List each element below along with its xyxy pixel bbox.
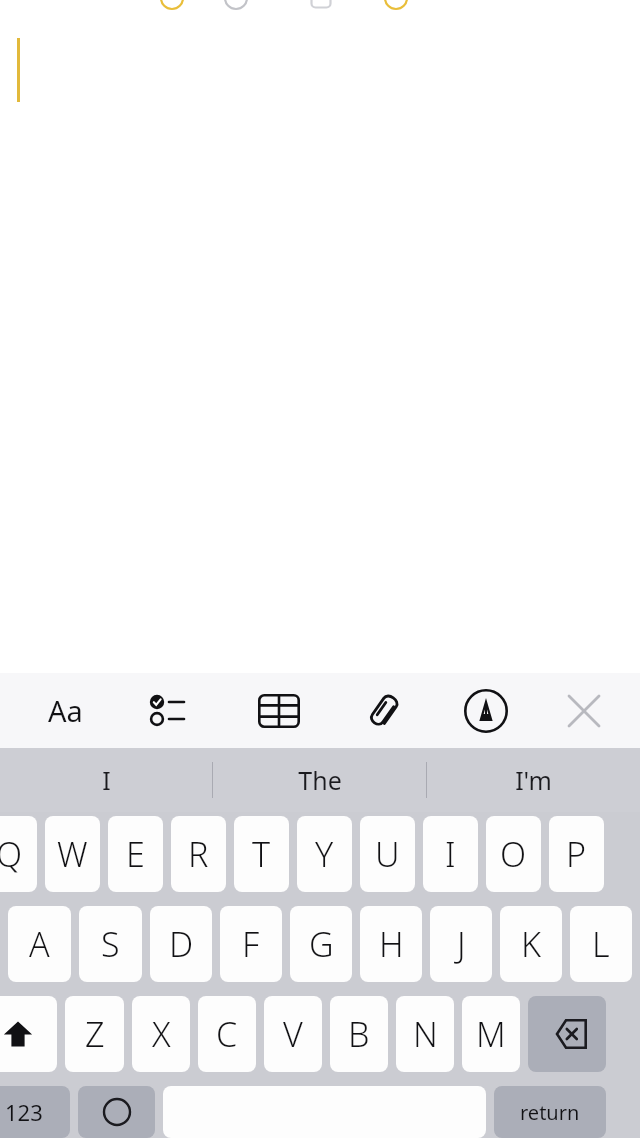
staticText: return: [520, 1099, 580, 1126]
staticText: W: [57, 831, 88, 877]
button[interactable]: I: [0, 748, 212, 812]
button[interactable]: Markup: [452, 673, 520, 748]
staticText: I: [445, 831, 456, 877]
staticText: G: [309, 921, 334, 967]
staticText: Q: [0, 831, 23, 877]
button[interactable]: U: [360, 816, 415, 892]
staticText: B: [348, 1011, 370, 1057]
button[interactable]: W: [45, 816, 100, 892]
button[interactable]: K: [500, 906, 562, 982]
staticText: O: [500, 831, 527, 877]
staticText: U: [375, 831, 400, 877]
staticText: A: [29, 921, 50, 967]
button[interactable]: Emoji: [78, 1086, 155, 1138]
button[interactable]: N: [396, 996, 454, 1072]
button[interactable]: R: [171, 816, 226, 892]
staticText: R: [188, 831, 209, 877]
staticText: Y: [315, 831, 334, 877]
staticText: Aa: [48, 691, 83, 730]
button[interactable]: F: [220, 906, 282, 982]
button[interactable]: Attach: [350, 673, 418, 748]
button[interactable]: Aa: [26, 673, 104, 748]
staticText: D: [169, 921, 194, 967]
staticText: K: [521, 921, 541, 967]
staticText: Z: [85, 1011, 105, 1057]
button[interactable]: return: [494, 1086, 606, 1138]
button[interactable]: I: [423, 816, 478, 892]
staticText: T: [252, 831, 271, 877]
button[interactable]: L: [570, 906, 632, 982]
button[interactable]: I'm: [427, 748, 640, 812]
staticText: N: [413, 1011, 438, 1057]
staticText: I: [102, 763, 111, 797]
staticText: C: [216, 1011, 238, 1057]
button[interactable]: H: [360, 906, 422, 982]
staticText: P: [566, 831, 587, 877]
staticText: E: [126, 831, 145, 877]
button[interactable]: Table: [245, 673, 313, 748]
staticText: 123: [5, 1097, 43, 1127]
staticText: L: [592, 921, 610, 967]
button[interactable]: C: [198, 996, 256, 1072]
button[interactable]: 123: [0, 1086, 70, 1138]
button[interactable]: Close keyboard: [550, 673, 618, 748]
button[interactable]: M: [462, 996, 520, 1072]
button[interactable]: Backspace: [528, 996, 606, 1072]
button[interactable]: Y: [297, 816, 352, 892]
button[interactable]: J: [430, 906, 492, 982]
button[interactable]: E: [108, 816, 163, 892]
button[interactable]: Checklist: [137, 673, 205, 748]
button[interactable]: P: [549, 816, 604, 892]
button[interactable]: T: [234, 816, 289, 892]
staticText: The: [298, 763, 342, 797]
staticText: M: [476, 1011, 506, 1057]
button[interactable]: O: [486, 816, 541, 892]
staticText: V: [283, 1011, 303, 1057]
staticText: S: [101, 921, 120, 967]
button[interactable]: G: [290, 906, 352, 982]
button[interactable]: X: [132, 996, 190, 1072]
staticText: F: [242, 921, 260, 967]
button[interactable]: The: [213, 748, 426, 812]
staticText: J: [457, 921, 466, 967]
button[interactable]: B: [330, 996, 388, 1072]
button[interactable]: Shift: [0, 996, 57, 1072]
staticText: I'm: [515, 763, 552, 797]
button[interactable]: Q: [0, 816, 37, 892]
staticText: H: [379, 921, 404, 967]
staticText: X: [152, 1011, 171, 1057]
button[interactable]: S: [79, 906, 142, 982]
button[interactable]: A: [8, 906, 71, 982]
button[interactable]: D: [150, 906, 212, 982]
button[interactable]: Z: [65, 996, 124, 1072]
button[interactable]: V: [264, 996, 322, 1072]
